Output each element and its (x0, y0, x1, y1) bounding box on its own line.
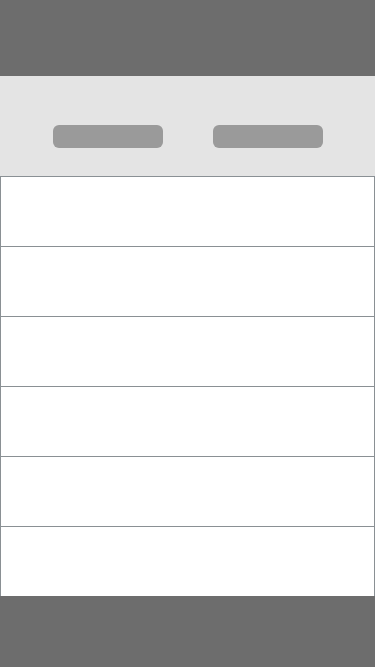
button[interactable]: Filter one (53, 125, 163, 148)
button[interactable]: Filter two (213, 125, 323, 148)
button[interactable]: List item 4 (0, 386, 375, 456)
button[interactable]: List item 2 (0, 246, 375, 316)
button[interactable]: List item 3 (0, 316, 375, 386)
button[interactable]: List item 1 (0, 176, 375, 246)
button[interactable]: List item 5 (0, 456, 375, 526)
button[interactable]: List item 6 (0, 526, 375, 596)
